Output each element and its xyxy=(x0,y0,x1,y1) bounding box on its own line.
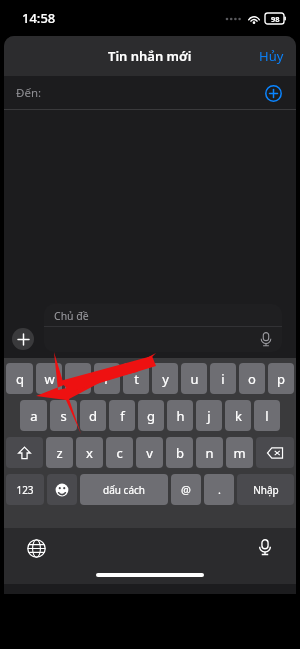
staticText: t xyxy=(134,370,139,388)
staticText: h xyxy=(176,407,185,425)
staticText: p xyxy=(277,370,285,388)
staticText: f xyxy=(120,407,125,425)
button[interactable]: b xyxy=(166,437,193,468)
button[interactable]: m xyxy=(226,437,253,468)
staticText: b xyxy=(176,444,184,462)
staticText: i xyxy=(221,370,225,388)
button[interactable]: q xyxy=(6,363,33,394)
button[interactable]: t xyxy=(123,363,149,394)
button[interactable]: dấu cách xyxy=(80,474,168,505)
button[interactable]: e xyxy=(65,363,91,394)
button[interactable]: w xyxy=(36,363,62,394)
staticText: y xyxy=(162,370,169,388)
button[interactable]: . xyxy=(204,474,234,505)
button[interactable]: j xyxy=(196,400,222,431)
button[interactable]: z xyxy=(46,437,73,468)
button[interactable]: x xyxy=(76,437,103,468)
staticText: dấu cách xyxy=(103,483,145,497)
staticText: Hủy xyxy=(259,47,284,65)
button[interactable]: Backspace xyxy=(256,437,294,468)
staticText: v xyxy=(146,444,153,462)
button[interactable]: p xyxy=(268,363,294,394)
staticText: 98 xyxy=(271,14,280,24)
staticText: r xyxy=(104,370,110,388)
staticText: d xyxy=(89,407,97,425)
button[interactable]: y xyxy=(152,363,178,394)
button[interactable]: n xyxy=(196,437,223,468)
button[interactable]: u xyxy=(181,363,207,394)
staticText: s xyxy=(60,407,67,425)
button[interactable]: Voice input xyxy=(252,534,278,560)
staticText: u xyxy=(190,370,199,388)
button[interactable]: d xyxy=(80,400,106,431)
button[interactable]: a xyxy=(20,400,47,431)
staticText: . xyxy=(218,482,221,497)
button[interactable]: Emoji xyxy=(47,474,77,505)
staticText: @ xyxy=(181,482,191,497)
button[interactable]: c xyxy=(106,437,133,468)
staticText: n xyxy=(205,444,214,462)
staticText: w xyxy=(44,370,55,388)
button[interactable]: Hủy xyxy=(247,39,296,73)
button[interactable]: Add contact xyxy=(260,80,286,106)
staticText: c xyxy=(116,444,123,462)
staticText: Đến: xyxy=(16,85,42,101)
button[interactable]: o xyxy=(239,363,265,394)
button[interactable]: Shift xyxy=(6,437,43,468)
button[interactable]: k xyxy=(225,400,251,431)
button[interactable]: i xyxy=(210,363,236,394)
button[interactable]: Add attachment xyxy=(12,328,34,350)
button[interactable]: Nhập xyxy=(237,474,294,505)
staticText: 123 xyxy=(16,483,34,497)
staticText: j xyxy=(207,407,211,425)
staticText: a xyxy=(30,407,38,425)
button[interactable]: @ xyxy=(171,474,201,505)
staticText: 14:58 xyxy=(22,9,56,27)
button[interactable]: f xyxy=(109,400,135,431)
button[interactable]: g xyxy=(138,400,164,431)
staticText: e xyxy=(74,370,82,388)
staticText: Tin nhắn mới xyxy=(108,47,192,65)
staticText: g xyxy=(147,407,155,425)
staticText: m xyxy=(233,444,246,462)
button[interactable]: s xyxy=(50,400,77,431)
button[interactable]: l xyxy=(254,400,280,431)
staticText: Chủ đề xyxy=(54,309,89,323)
staticText: k xyxy=(235,407,242,425)
button[interactable]: Change keyboard language xyxy=(22,534,50,562)
staticText: x xyxy=(86,444,93,462)
button[interactable]: Dictate xyxy=(258,331,274,347)
staticText: Nhập xyxy=(253,483,279,497)
staticText: o xyxy=(248,370,256,388)
staticText: q xyxy=(16,370,24,388)
button[interactable]: r xyxy=(94,363,120,394)
button[interactable]: h xyxy=(167,400,193,431)
button[interactable]: Chủ đề xyxy=(44,304,282,352)
staticText: z xyxy=(56,444,63,462)
button[interactable]: v xyxy=(136,437,163,468)
staticText: l xyxy=(265,407,269,425)
button[interactable]: 123 xyxy=(6,474,44,505)
